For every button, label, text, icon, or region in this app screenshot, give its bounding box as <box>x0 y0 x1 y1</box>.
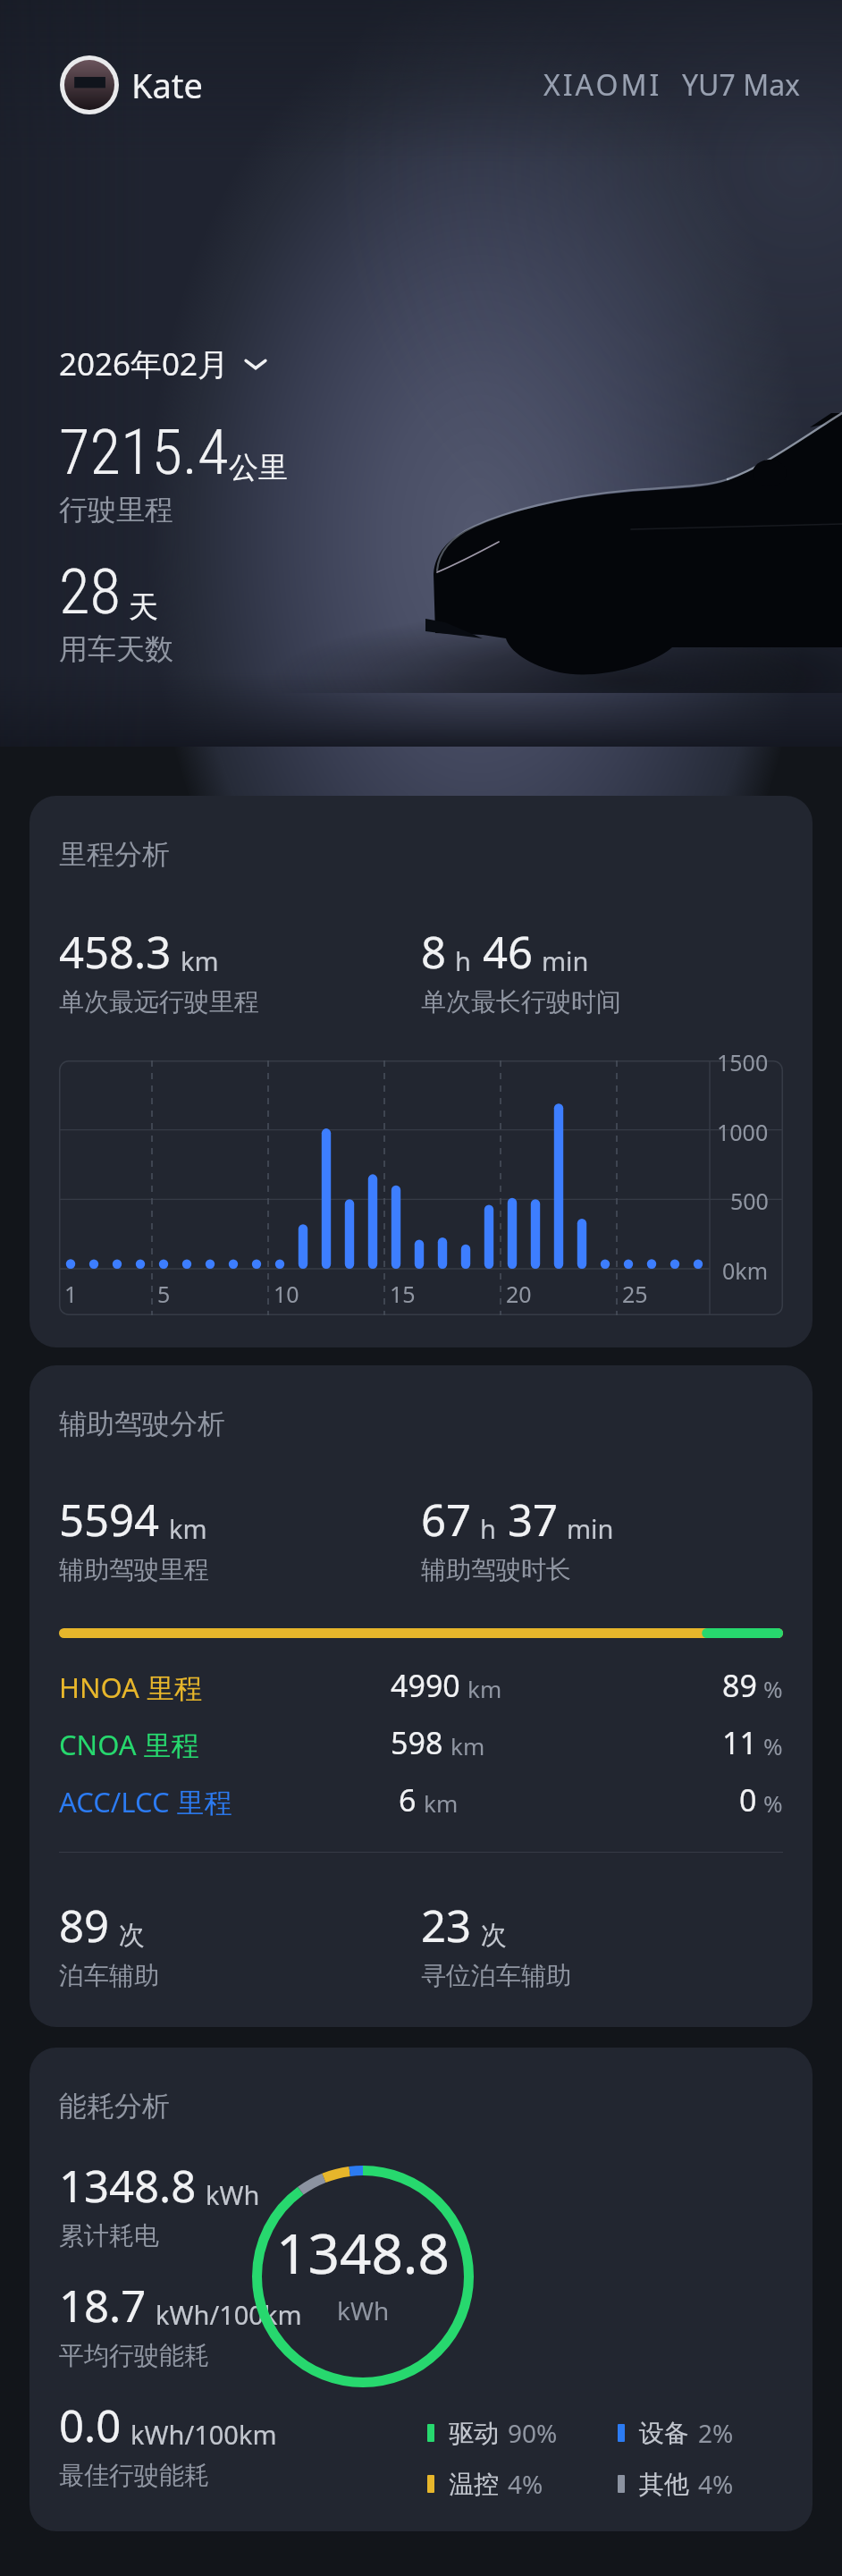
staticText: 1000 <box>717 1117 769 1147</box>
staticText: CNOA 里程 <box>59 1726 199 1763</box>
staticText: 1348.8 <box>59 2156 197 2216</box>
staticText: % <box>763 1730 783 1761</box>
staticText: 5594 <box>59 1490 160 1550</box>
staticText: 46 <box>483 922 534 982</box>
staticText: 67 <box>421 1490 472 1550</box>
staticText: 5 <box>157 1279 171 1309</box>
staticText: 行驶里程 <box>59 492 173 528</box>
staticText: km <box>424 1787 459 1819</box>
staticText: 89 <box>722 1665 757 1706</box>
staticText: 10 <box>274 1279 299 1309</box>
staticText: km <box>181 943 219 978</box>
staticText: 1348.8 <box>276 2215 450 2290</box>
staticText: 11 <box>722 1722 757 1763</box>
staticText: 0.0 <box>59 2395 122 2455</box>
staticText: 能耗分析 <box>59 2089 170 2124</box>
button[interactable]: Profile <box>60 55 119 114</box>
staticText: 辅助驾驶里程 <box>59 1554 209 1585</box>
staticText: 天 <box>129 588 158 626</box>
button[interactable]: 能耗分析 <box>29 2048 813 2531</box>
staticText: 28 <box>59 554 122 629</box>
staticText: kWh/100km <box>131 2417 277 2452</box>
staticText: 次 <box>481 1919 507 1952</box>
staticText: 累计耗电 <box>59 2220 159 2251</box>
staticText: km <box>467 1673 502 1704</box>
staticText: 其他 <box>639 2469 689 2500</box>
staticText: h <box>455 943 471 978</box>
staticText: 458.3 <box>59 922 172 982</box>
staticText: 平均行驶能耗 <box>59 2340 209 2371</box>
staticText: 4% <box>508 2467 543 2501</box>
staticText: 2% <box>698 2416 734 2450</box>
staticText: YU7 Max <box>682 65 801 105</box>
staticText: 90% <box>508 2416 558 2450</box>
staticText: 用车天数 <box>59 631 173 667</box>
staticText: % <box>763 1787 783 1819</box>
staticText: 598 <box>391 1722 443 1763</box>
staticText: 25 <box>622 1279 648 1309</box>
staticText: 单次最远行驶里程 <box>59 986 259 1018</box>
staticText: 0 <box>739 1779 757 1820</box>
staticText: 8 <box>421 922 447 982</box>
button[interactable]: 辅助驾驶分析 <box>29 1365 813 2027</box>
staticText: 500 <box>730 1186 769 1216</box>
staticText: 寻位泊车辅助 <box>421 1960 571 1991</box>
staticText: 最佳行驶能耗 <box>59 2460 209 2491</box>
staticText: 6 <box>399 1779 417 1820</box>
staticText: 1 <box>64 1279 78 1309</box>
button[interactable]: 里程分析 <box>29 796 813 1347</box>
staticText: 辅助驾驶分析 <box>59 1406 225 1441</box>
staticText: HNOA 里程 <box>59 1668 202 1706</box>
staticText: 4990 <box>391 1665 460 1706</box>
staticText: km <box>450 1730 485 1761</box>
staticText: km <box>169 1511 207 1546</box>
staticText: 18.7 <box>59 2276 147 2335</box>
staticText: 次 <box>119 1919 145 1952</box>
staticText: 89 <box>59 1896 110 1955</box>
staticText: 7215.4 <box>59 415 229 489</box>
staticText: 15 <box>390 1279 416 1309</box>
staticText: 1500 <box>717 1047 769 1077</box>
staticText: 单次最长行驶时间 <box>421 986 621 1018</box>
staticText: 0km <box>722 1255 769 1286</box>
staticText: kWh <box>337 2293 390 2327</box>
staticText: 23 <box>421 1896 472 1955</box>
staticText: min <box>567 1511 614 1546</box>
staticText: 里程分析 <box>59 837 170 872</box>
staticText: 2026年02月 <box>59 342 230 385</box>
staticText: 20 <box>506 1279 532 1309</box>
staticText: Kate <box>131 62 203 108</box>
staticText: 辅助驾驶时长 <box>421 1554 571 1585</box>
staticText: min <box>542 943 589 978</box>
staticText: kWh <box>206 2177 260 2212</box>
staticText: ACC/LCC 里程 <box>59 1783 232 1820</box>
staticText: 4% <box>698 2467 734 2501</box>
staticText: h <box>480 1511 496 1546</box>
staticText: XIAOMI <box>543 65 662 105</box>
button[interactable]: 2026年02月 <box>59 342 267 385</box>
staticText: 驱动 <box>449 2418 499 2449</box>
staticText: 泊车辅助 <box>59 1960 159 1991</box>
staticText: 温控 <box>449 2469 499 2500</box>
staticText: kWh/100km <box>156 2297 302 2332</box>
staticText: % <box>763 1673 783 1704</box>
staticText: 设备 <box>639 2418 689 2449</box>
staticText: 公里 <box>229 449 288 486</box>
staticText: 37 <box>508 1490 559 1550</box>
